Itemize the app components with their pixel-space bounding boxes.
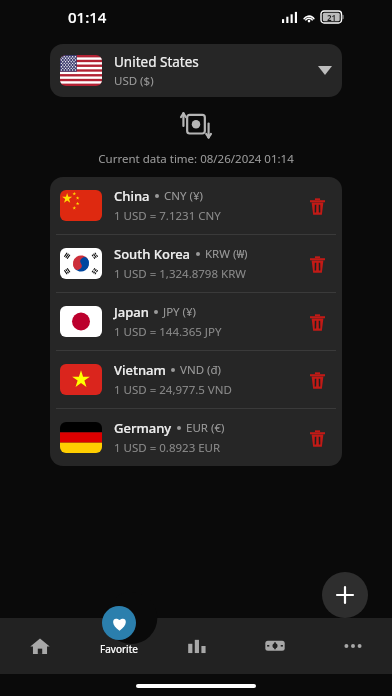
button[interactable]: Delete Germany xyxy=(302,423,332,453)
button[interactable]: Rates xyxy=(236,618,314,674)
button[interactable]: China xyxy=(50,177,342,234)
button[interactable]: Home xyxy=(0,618,79,674)
button[interactable]: Add currency xyxy=(322,572,368,618)
button[interactable]: Germany xyxy=(50,409,342,466)
staticText: 1 USD = 144.365 JPY xyxy=(114,324,222,340)
staticText: KRW (₩) xyxy=(205,246,248,262)
button[interactable]: Delete Japan xyxy=(302,307,332,337)
staticText: 1 USD = 1,324.8798 KRW xyxy=(114,266,246,282)
staticText: VND (đ) xyxy=(180,362,222,378)
button[interactable]: United States xyxy=(50,44,342,97)
other: Expand xyxy=(318,66,332,75)
staticText: Germany xyxy=(114,419,172,437)
staticText: 01:14 xyxy=(68,7,107,27)
staticText: Current data time: 08/26/2024 01:14 xyxy=(0,151,392,167)
button[interactable]: Statistics xyxy=(158,618,236,674)
staticText: Favorite xyxy=(100,642,138,656)
staticText: EUR (€) xyxy=(186,420,225,436)
button[interactable]: South Korea xyxy=(50,235,342,292)
staticText: Vietnam xyxy=(114,361,166,379)
button[interactable]: Delete South Korea xyxy=(302,249,332,279)
staticText: CNY (¥) xyxy=(164,188,203,204)
button[interactable]: Delete China xyxy=(302,191,332,221)
staticText: 1 USD = 7.1231 CNY xyxy=(114,208,221,224)
button[interactable]: More xyxy=(314,618,392,674)
staticText: United States xyxy=(114,53,199,71)
staticText: 1 USD = 0.8923 EUR xyxy=(114,440,221,456)
staticText: JPY (¥) xyxy=(163,304,197,320)
button[interactable]: Favorite xyxy=(100,622,138,670)
staticText: 1 USD = 24,977.5 VND xyxy=(114,382,232,398)
staticText: USD ($) xyxy=(114,73,154,89)
staticText: China xyxy=(114,187,150,205)
staticText: South Korea xyxy=(114,245,191,263)
button[interactable]: Japan xyxy=(50,293,342,350)
button[interactable]: Delete Vietnam xyxy=(302,365,332,395)
staticText: Japan xyxy=(114,303,149,321)
staticText: 21 xyxy=(327,12,337,23)
button[interactable]: Swap currencies xyxy=(179,111,213,141)
button[interactable]: Vietnam xyxy=(50,351,342,408)
